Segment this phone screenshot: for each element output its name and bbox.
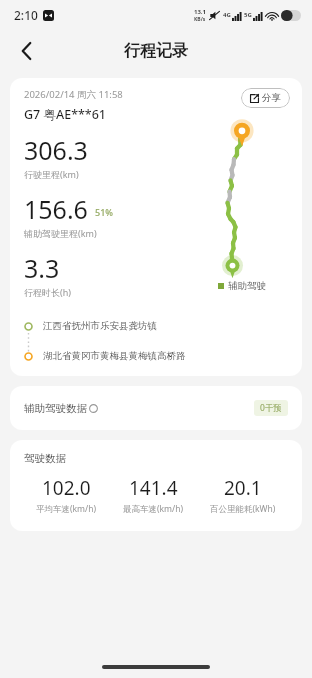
button[interactable]: 辅助驾驶数据 xyxy=(10,386,302,430)
staticText: 306.3 xyxy=(24,133,88,167)
staticText: 51% xyxy=(95,206,113,218)
staticText: 141.4 xyxy=(129,475,178,501)
staticText: 湖北省黄冈市黄梅县黄梅镇高桥路 xyxy=(43,350,186,362)
button[interactable]: Back xyxy=(8,33,44,69)
staticText: 最高车速(km/h) xyxy=(123,503,184,515)
staticText: 0干预 xyxy=(260,402,282,414)
staticText: 江西省抚州市乐安县龚坊镇 xyxy=(43,320,157,332)
staticText: 102.0 xyxy=(42,475,91,501)
staticText: KB/s xyxy=(194,16,206,23)
staticText: 辅助驾驶里程(km) xyxy=(24,227,97,239)
staticText: 辅助驾驶 xyxy=(228,280,266,292)
staticText: G7 粤AE***61 xyxy=(24,106,106,123)
staticText: 20.1 xyxy=(224,475,262,501)
staticText: 分享 xyxy=(262,92,281,104)
button[interactable]: 分享 xyxy=(241,88,290,108)
staticText: 13.1 xyxy=(194,8,206,16)
staticText: 行驶里程(km) xyxy=(24,168,79,180)
staticText: 5G xyxy=(244,11,252,19)
staticText: 辅助驾驶数据 xyxy=(24,402,87,415)
staticText: 驾驶数据 xyxy=(24,452,66,465)
staticText: 2026/02/14 周六 11:58 xyxy=(24,88,123,101)
staticText: 4G xyxy=(223,11,231,19)
staticText: 2:10 xyxy=(14,7,38,23)
staticText: 行程记录 xyxy=(124,41,188,61)
staticText: 平均车速(km/h) xyxy=(36,503,97,515)
staticText: 3.3 xyxy=(24,251,60,285)
staticText: 百公里能耗(kWh) xyxy=(210,503,276,515)
staticText: 156.6 xyxy=(24,192,88,226)
staticText: 行程时长(h) xyxy=(24,286,71,298)
